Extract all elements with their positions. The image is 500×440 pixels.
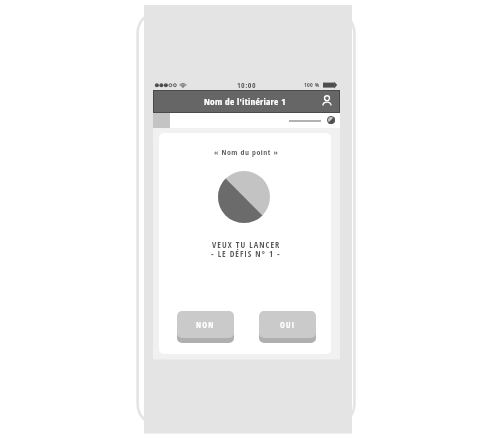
button[interactable]: Account bbox=[320, 94, 334, 108]
staticText: 10:00 bbox=[237, 80, 257, 90]
staticText: « Nom du point » bbox=[214, 147, 279, 158]
staticText: NON bbox=[196, 319, 215, 330]
button[interactable]: Layers bbox=[327, 116, 335, 124]
staticText: Nom de l'itinériare 1 bbox=[204, 95, 286, 108]
staticText: - LE DÉFIS N° 1 - bbox=[211, 248, 281, 260]
staticText: OUI bbox=[280, 319, 296, 330]
staticText: VEUX TU LANCER bbox=[212, 239, 281, 251]
button[interactable]: Nom de l'itinériare 1 bbox=[153, 90, 340, 113]
button[interactable]: NON bbox=[177, 311, 234, 338]
button[interactable]: OUI bbox=[259, 311, 316, 338]
staticText: 100 % bbox=[304, 81, 320, 89]
